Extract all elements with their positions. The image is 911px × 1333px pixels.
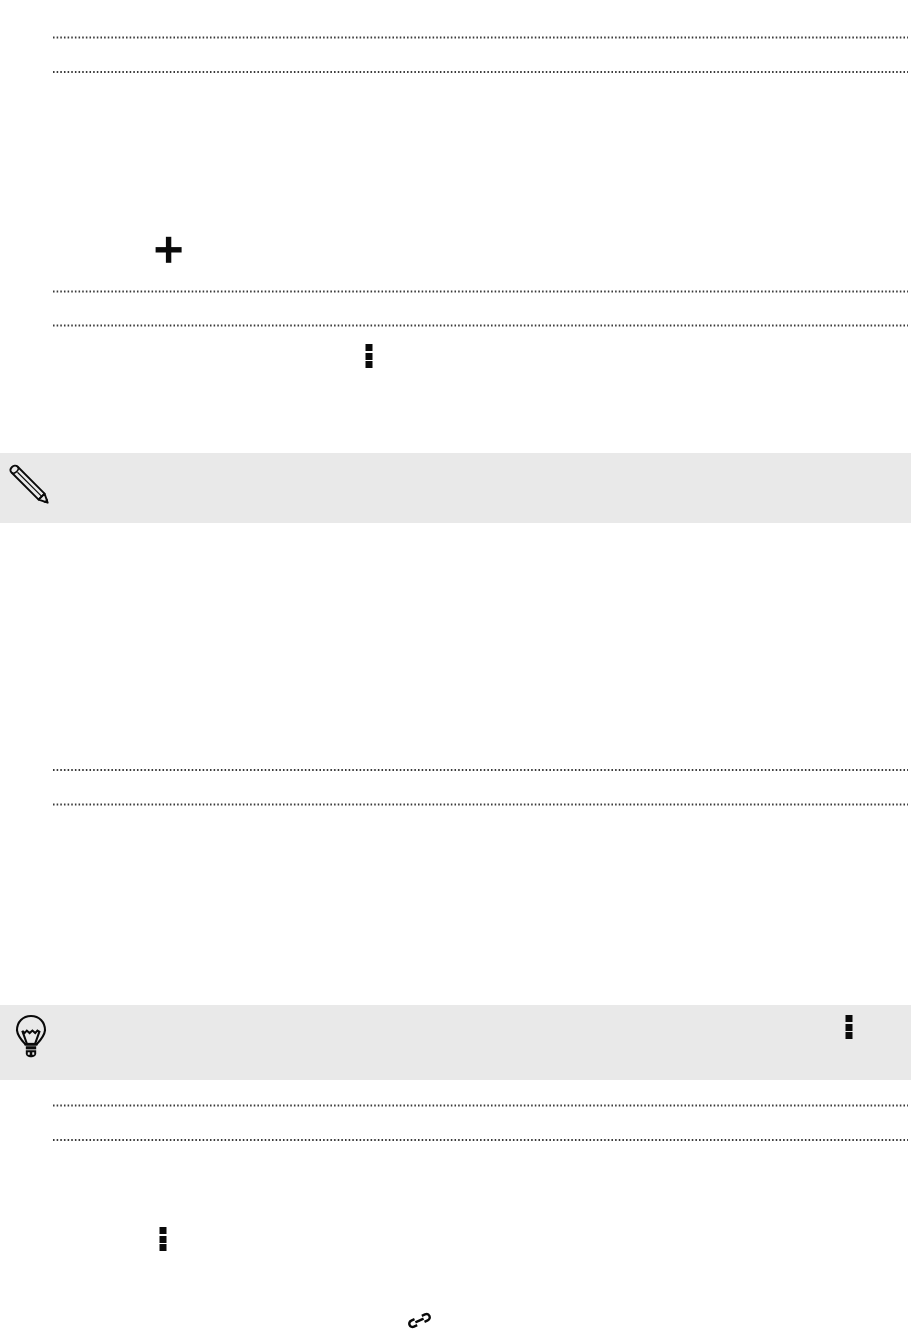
button[interactable]: More options bbox=[150, 1224, 176, 1254]
button[interactable]: More options bbox=[356, 341, 382, 371]
button[interactable]: Link bbox=[401, 1308, 438, 1333]
button[interactable]: Add bbox=[152, 233, 186, 267]
button[interactable] bbox=[0, 453, 911, 523]
button[interactable]: More options bbox=[836, 1012, 862, 1042]
button[interactable] bbox=[0, 1005, 911, 1080]
